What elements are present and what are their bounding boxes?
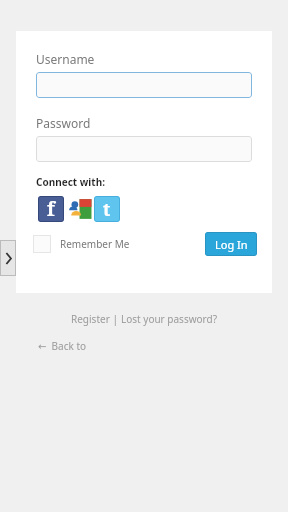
button[interactable] [36, 72, 252, 98]
button[interactable]: Sign in with Twitter [94, 196, 120, 222]
staticText: f [47, 196, 55, 222]
button[interactable]: Sign in with Google [66, 196, 92, 222]
button[interactable]: Open side panel [0, 240, 16, 276]
staticText: Connect with: [36, 175, 105, 189]
staticText: Log In [215, 237, 248, 252]
button[interactable]: Register [71, 312, 110, 326]
button[interactable]: Sign in with Facebook [38, 196, 64, 222]
staticText: Password [36, 115, 91, 131]
button[interactable]: Remember Me [33, 235, 130, 253]
button[interactable]: Lost your password? [121, 312, 218, 326]
staticText: Remember Me [60, 237, 130, 251]
button[interactable] [36, 136, 252, 162]
staticText: Username [36, 51, 95, 67]
staticText: | [110, 312, 121, 326]
button[interactable]: ← Back to [38, 339, 87, 353]
staticText: ← Back to [38, 339, 87, 353]
staticText: t [103, 197, 111, 222]
button[interactable]: Log In [205, 232, 257, 256]
